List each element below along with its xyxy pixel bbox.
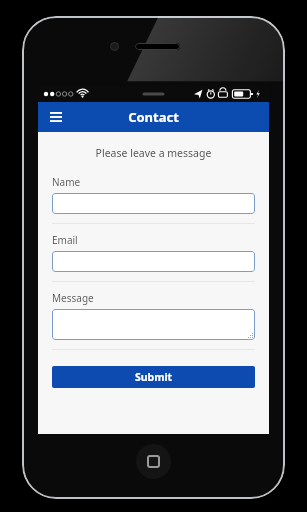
button[interactable]: Home bbox=[136, 444, 171, 479]
staticText: Message bbox=[52, 291, 94, 305]
staticText: Email bbox=[52, 233, 78, 247]
button[interactable]: Submit bbox=[52, 366, 255, 388]
staticText: Name bbox=[52, 175, 81, 189]
staticText: Contact bbox=[128, 108, 179, 126]
staticText: Please leave a message bbox=[52, 146, 255, 160]
staticText: Submit bbox=[135, 370, 173, 384]
button[interactable] bbox=[52, 309, 255, 340]
button[interactable]: Open navigation menu bbox=[44, 105, 68, 129]
button[interactable] bbox=[52, 193, 255, 214]
button[interactable] bbox=[52, 251, 255, 272]
